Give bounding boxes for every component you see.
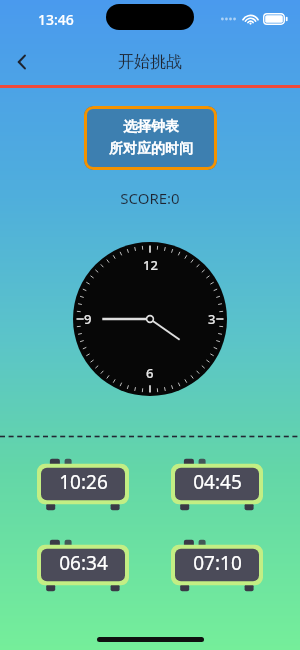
staticText: 9 xyxy=(84,310,92,328)
button[interactable]: Back xyxy=(0,40,44,84)
staticText: 04:45 xyxy=(193,469,242,495)
staticText: 10:26 xyxy=(59,469,108,495)
staticText: 06:34 xyxy=(59,550,108,576)
staticText: 12 xyxy=(143,256,158,274)
staticText: 13:46 xyxy=(38,10,74,29)
staticText: 07:10 xyxy=(193,550,242,576)
staticText: 所对应的时间 xyxy=(109,140,193,158)
button[interactable]: 04:45 xyxy=(167,455,267,517)
staticText: 3 xyxy=(208,310,216,328)
button[interactable]: 07:10 xyxy=(167,536,267,598)
staticText: 选择钟表 xyxy=(123,118,179,136)
button[interactable]: 10:26 xyxy=(33,455,133,517)
staticText: 开始挑战 xyxy=(118,52,182,72)
button[interactable]: 06:34 xyxy=(33,536,133,598)
staticText: SCORE:0 xyxy=(0,188,300,208)
button[interactable]: 选择钟表 xyxy=(84,106,217,170)
staticText: 6 xyxy=(146,364,154,382)
